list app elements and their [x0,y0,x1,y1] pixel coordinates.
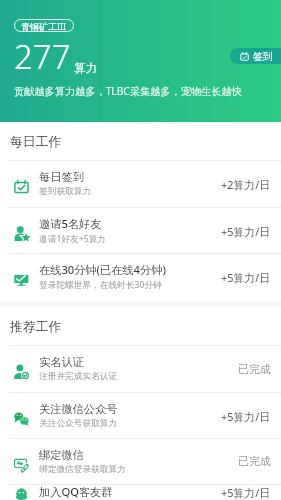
staticText: 算力 [74,61,97,75]
button[interactable]: 在线30分钟(已在线4分钟) [0,254,281,301]
staticText: +5算力/日 [221,485,271,500]
staticText: 每日签到 [39,170,84,184]
button[interactable]: 实名认证 [0,346,281,393]
staticText: 青铜矿工III [21,20,67,32]
staticText: 在线30分钟(已在线4分钟) [39,262,166,277]
staticText: 已完成 [238,363,271,377]
staticText: +5算力/日 [221,409,271,424]
staticText: 签到获取算力 [39,186,92,197]
staticText: 关注微信公众号 [39,402,118,416]
staticText: 邀请5名好友 [39,216,102,231]
staticText: 绑定微信 [39,448,84,462]
button[interactable]: 每日签到 [0,161,281,208]
button[interactable]: 绑定微信 [0,439,281,485]
staticText: +5算力/日 [221,270,271,285]
staticText: 推荐工作 [10,319,62,335]
staticText: 注册并完成实名认证 [39,371,118,382]
staticText: 登录陀螺世界，在线时长30分钟 [39,279,162,291]
staticText: 关注公众号获取算力 [39,418,118,429]
staticText: 签到 [253,50,273,63]
staticText: 每日工作 [10,134,62,150]
button[interactable]: 签到 [230,48,281,64]
staticText: +2算力/日 [221,177,271,192]
button[interactable]: 邀请5名好友 [0,208,281,254]
button[interactable]: 关注微信公众号 [0,393,281,439]
staticText: 邀请1好友+5算力 [39,233,107,245]
staticText: 277 [14,34,71,79]
staticText: +5算力/日 [221,224,271,239]
staticText: 贡献越多算力越多，TLBC采集越多，宠物生长越快 [14,84,242,98]
staticText: 已完成 [238,455,271,469]
staticText: 实名认证 [39,355,84,369]
staticText: 绑定微信登录获取算力 [39,464,126,475]
staticText: 加入QQ客友群 [39,484,113,499]
button[interactable]: 加入QQ客友群 [0,485,281,500]
